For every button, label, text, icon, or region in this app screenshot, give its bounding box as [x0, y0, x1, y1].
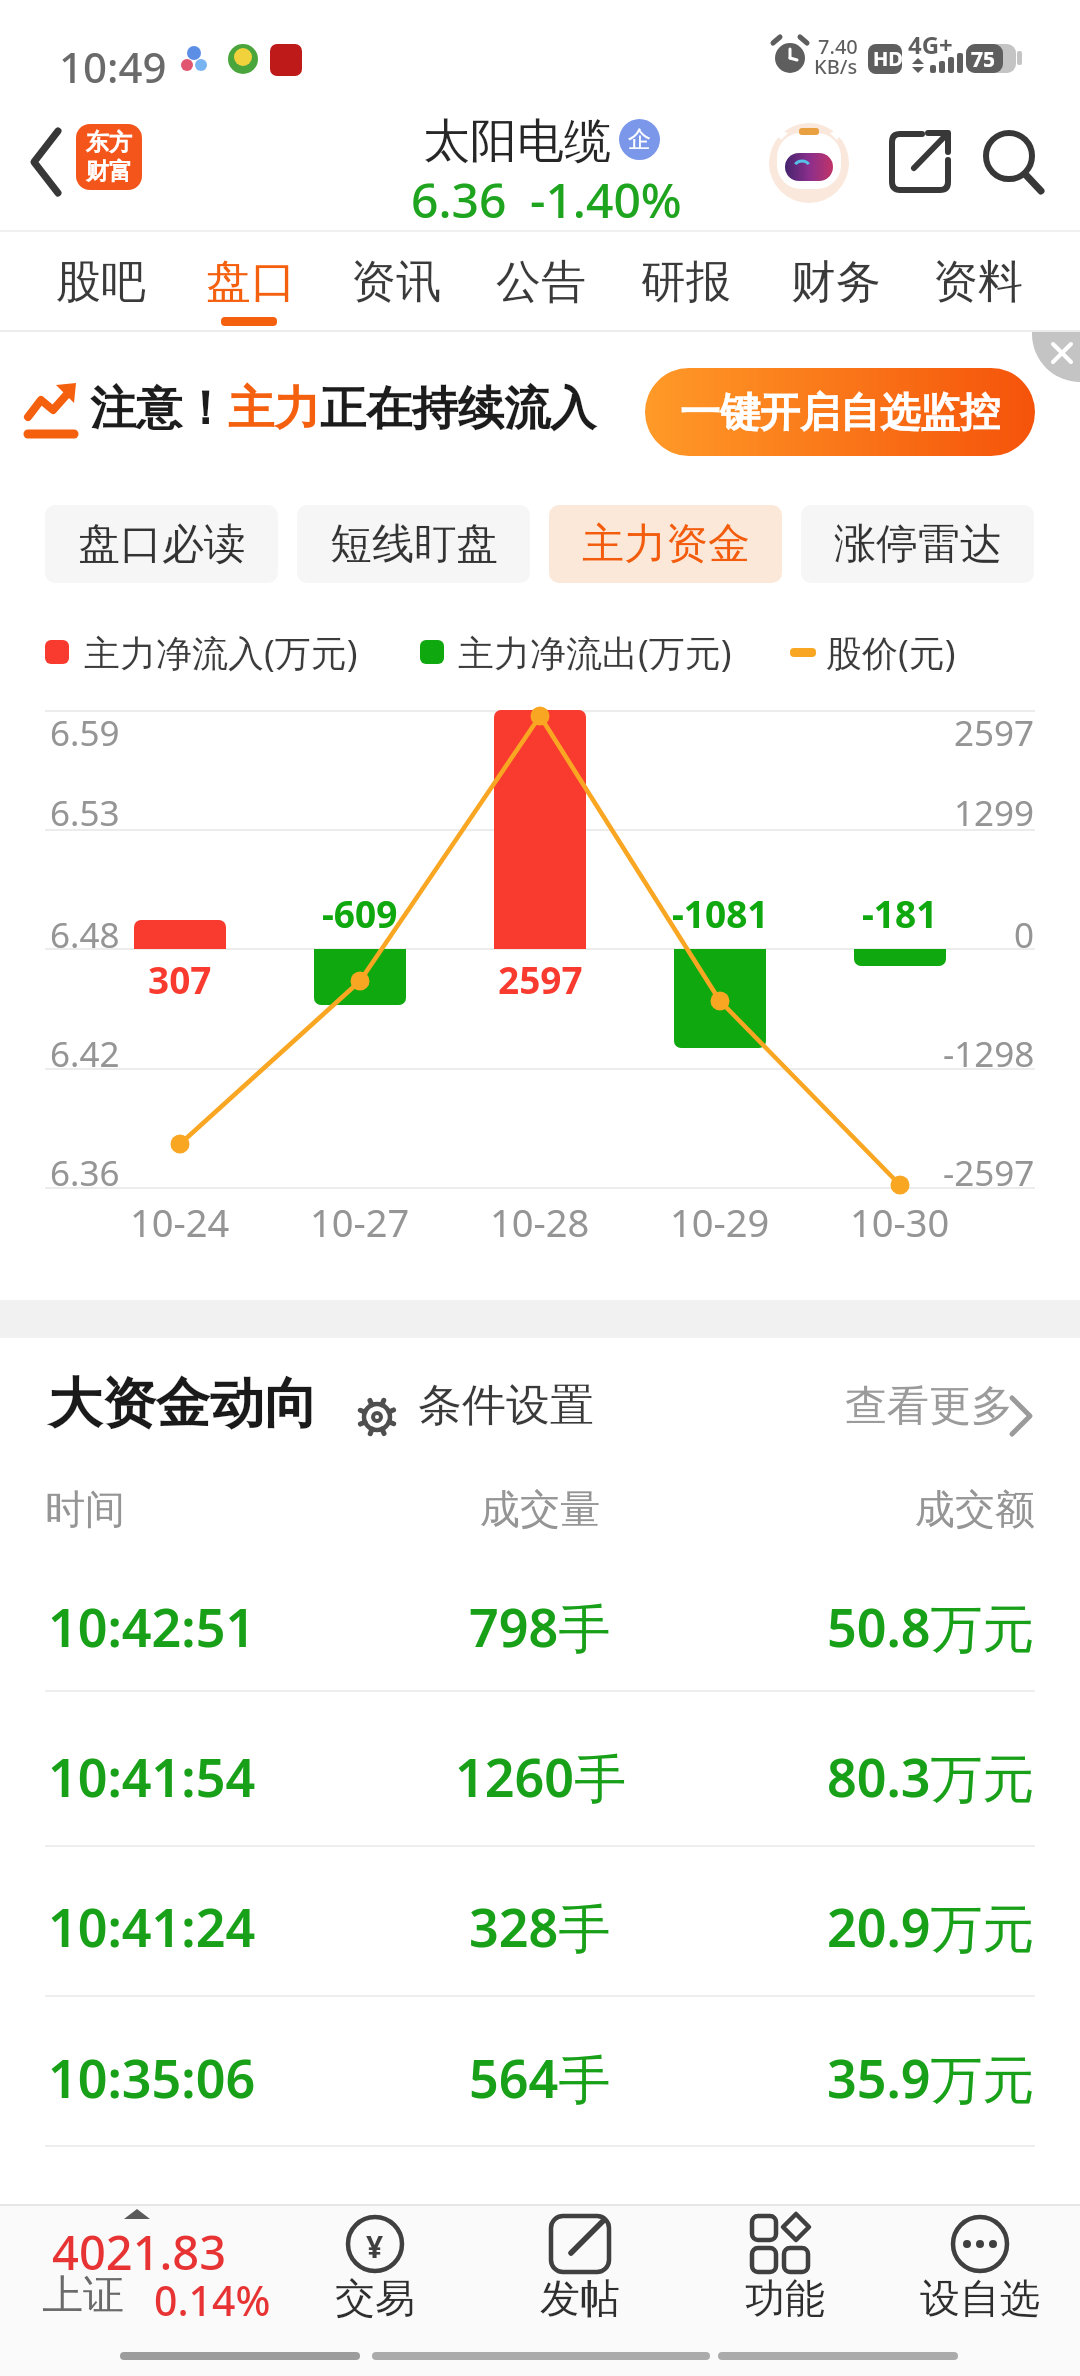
staticText: 20.9万元	[827, 1891, 1035, 1962]
button[interactable]: 涨停雷达	[801, 505, 1034, 583]
staticText: 查看更多	[845, 1380, 1013, 1433]
staticText: KB/s	[814, 53, 858, 80]
staticText: 307	[148, 954, 212, 1004]
staticText: 2597	[498, 954, 583, 1004]
button[interactable]	[355, 1385, 595, 1449]
staticText: 6.53	[50, 789, 120, 837]
button[interactable]	[975, 120, 1055, 200]
staticText: 发帖	[540, 2273, 620, 2323]
button[interactable]: 研报	[620, 240, 752, 324]
staticText: 正在持续流入	[320, 380, 596, 438]
staticText: 资料	[933, 254, 1023, 311]
button[interactable]: 财务	[770, 240, 902, 324]
staticText: 10-30	[850, 1196, 950, 1248]
staticText: -1081	[672, 888, 769, 938]
staticText: 798手	[469, 1591, 611, 1662]
button[interactable]	[905, 2208, 1055, 2333]
staticText: 功能	[745, 2273, 825, 2323]
staticText: 1260手	[455, 1741, 626, 1812]
button[interactable]	[0, 1866, 1080, 2011]
staticText: HD	[873, 45, 903, 72]
staticText: -1.40%	[530, 167, 682, 232]
staticText: 交易	[335, 2273, 415, 2323]
staticText: -2597	[943, 1149, 1035, 1197]
button[interactable]	[710, 2208, 860, 2333]
staticText: 股价(元)	[826, 628, 956, 677]
staticText: 盘口必读	[78, 518, 246, 571]
staticText: 东方	[86, 128, 132, 157]
staticText: 10-28	[490, 1196, 590, 1248]
button[interactable]	[20, 2210, 290, 2335]
staticText: 4021.83	[52, 2220, 227, 2284]
staticText: 6.42	[50, 1030, 120, 1078]
staticText: -609	[322, 888, 398, 938]
staticText: 4G+	[908, 28, 953, 61]
staticText: 1299	[954, 789, 1035, 837]
staticText: 大资金动向	[48, 1370, 318, 1438]
staticText: 资讯	[351, 254, 441, 311]
button[interactable]: 资讯	[330, 240, 462, 324]
button[interactable]	[880, 120, 960, 200]
button[interactable]: 短线盯盘	[297, 505, 530, 583]
button[interactable]	[300, 2208, 450, 2333]
staticText: 财务	[791, 254, 881, 311]
staticText: 时间	[45, 1484, 125, 1534]
staticText: 10:41:54	[48, 1741, 256, 1812]
staticText: 80.3万元	[827, 1741, 1035, 1812]
staticText: 7.40	[818, 33, 858, 60]
staticText: -181	[862, 888, 938, 938]
staticText: 太阳电缆	[423, 112, 611, 171]
staticText: 设自选	[920, 2273, 1040, 2323]
staticText: -1298	[943, 1030, 1035, 1078]
button[interactable]	[0, 2017, 1080, 2162]
staticText: 35.9万元	[827, 2042, 1035, 2113]
staticText: 328手	[469, 1891, 611, 1962]
staticText: 股吧	[56, 254, 146, 311]
button[interactable]	[769, 123, 849, 203]
staticText: 一键开启自选监控	[680, 387, 1000, 437]
staticText: 10:49	[59, 38, 167, 95]
staticText: 上证	[42, 2270, 124, 2322]
staticText: 10:42:51	[48, 1591, 256, 1662]
staticText: 涨停雷达	[834, 518, 1002, 571]
button[interactable]	[0, 1566, 1080, 1711]
button[interactable]: 公告	[475, 240, 607, 324]
staticText: 564手	[469, 2042, 611, 2113]
button[interactable]: 一键开启自选监控	[645, 368, 1035, 456]
staticText: 注意！	[90, 380, 228, 438]
button[interactable]: 东方	[76, 124, 142, 190]
staticText: 10-27	[310, 1196, 410, 1248]
staticText: 成交量	[480, 1484, 600, 1534]
staticText: 0	[1014, 911, 1035, 959]
staticText: 10:35:06	[48, 2042, 256, 2113]
button[interactable]: 盘口	[185, 240, 317, 324]
button[interactable]	[505, 2208, 655, 2333]
staticText: 10:41:24	[48, 1891, 256, 1962]
staticText: 短线盯盘	[330, 518, 498, 571]
staticText: ¥	[366, 2226, 384, 2267]
staticText: 50.8万元	[827, 1591, 1035, 1662]
staticText: 2597	[954, 709, 1035, 757]
button[interactable]: 股吧	[35, 240, 167, 324]
button[interactable]	[1032, 332, 1080, 382]
staticText: 盘口	[206, 254, 296, 311]
staticText: 6.59	[50, 709, 120, 757]
staticText: 主力	[228, 380, 320, 438]
staticText: 10-24	[130, 1196, 230, 1248]
staticText: 6.48	[50, 911, 120, 959]
staticText: 研报	[641, 254, 731, 311]
staticText: 主力资金	[582, 518, 750, 571]
button[interactable]: 盘口必读	[45, 505, 278, 583]
staticText: 主力净流出(万元)	[458, 628, 732, 677]
button[interactable]: 资料	[912, 240, 1044, 324]
button[interactable]	[0, 1716, 1080, 1861]
button[interactable]: 主力资金	[549, 505, 782, 583]
staticText: 10-29	[670, 1196, 770, 1248]
staticText: 成交额	[915, 1484, 1035, 1534]
staticText: 主力净流入(万元)	[84, 628, 358, 677]
button[interactable]	[840, 1385, 1040, 1449]
staticText: 6.36	[50, 1149, 120, 1197]
staticText: 公告	[496, 254, 586, 311]
staticText: 条件设置	[418, 1378, 594, 1433]
staticText: 75	[971, 45, 996, 74]
